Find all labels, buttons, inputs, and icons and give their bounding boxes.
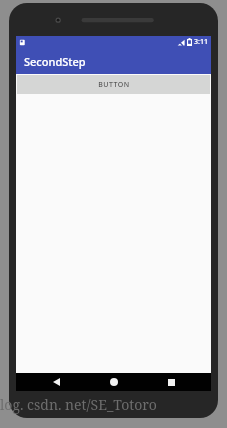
button[interactable]: Recent apps bbox=[154, 373, 188, 391]
staticText: SecondStep bbox=[24, 54, 86, 69]
button[interactable]: Home bbox=[97, 373, 131, 391]
staticText: 3:11 bbox=[194, 37, 208, 47]
button[interactable]: Back bbox=[39, 373, 73, 391]
staticText: log. csdn. net/SE_Totoro bbox=[0, 395, 157, 414]
button[interactable]: BUTTON bbox=[17, 75, 210, 94]
staticText: BUTTON bbox=[98, 80, 130, 90]
